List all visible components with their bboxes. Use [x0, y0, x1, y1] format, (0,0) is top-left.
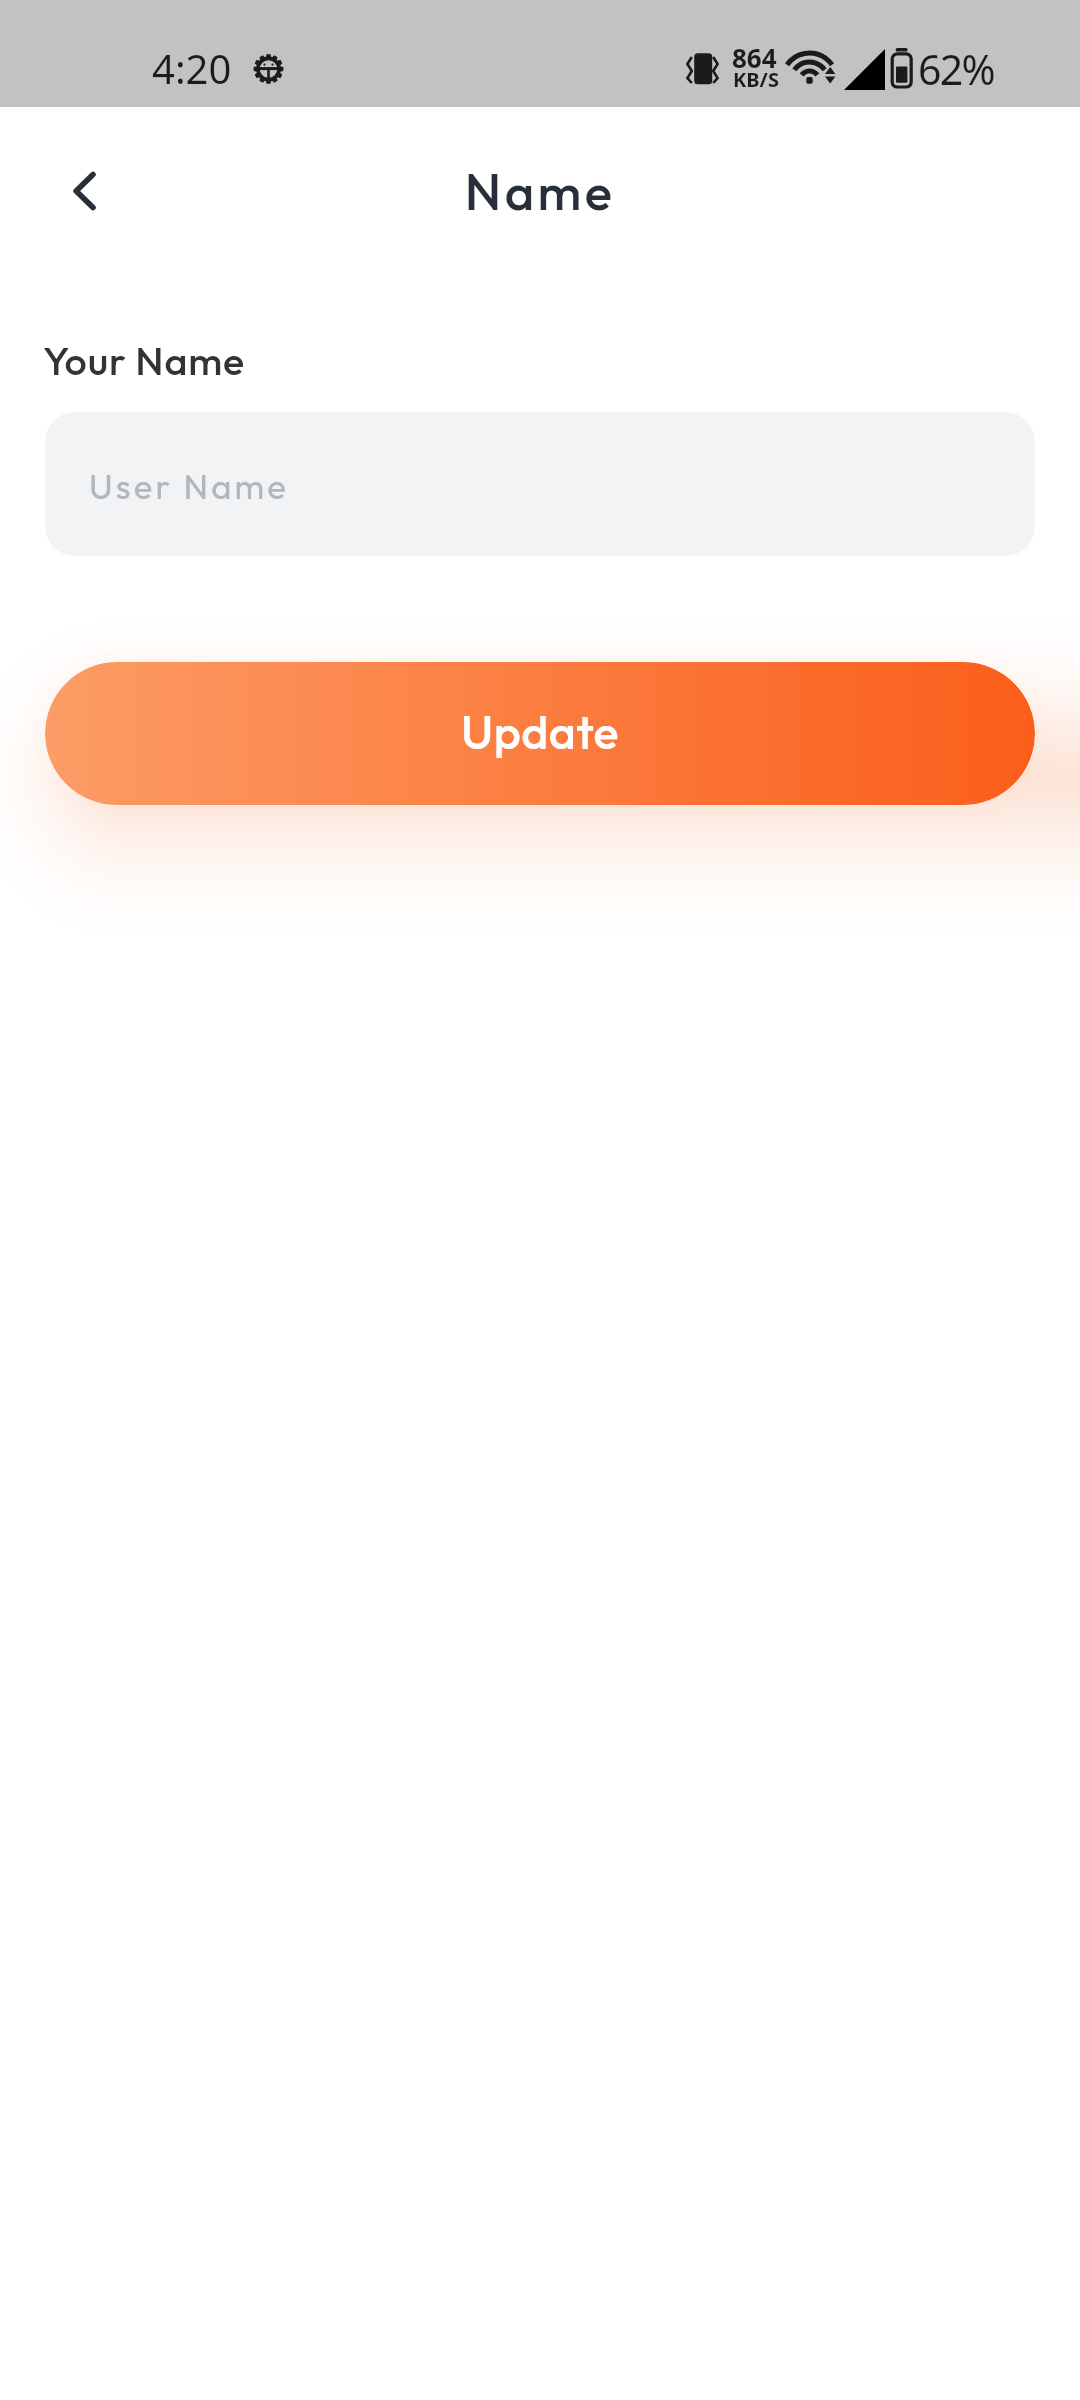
button[interactable]: User Name — [45, 412, 1035, 556]
staticText: KB/S — [733, 66, 779, 93]
staticText: Update — [461, 702, 619, 761]
staticText: User Name — [89, 464, 290, 508]
staticText: 62% — [918, 41, 995, 97]
button[interactable]: Back — [43, 146, 133, 236]
staticText: 4:20 — [152, 41, 232, 95]
staticText: Name — [0, 159, 1080, 223]
staticText: Your Name — [43, 335, 245, 385]
button[interactable]: Update — [45, 662, 1035, 805]
staticText: 864 — [732, 40, 777, 75]
